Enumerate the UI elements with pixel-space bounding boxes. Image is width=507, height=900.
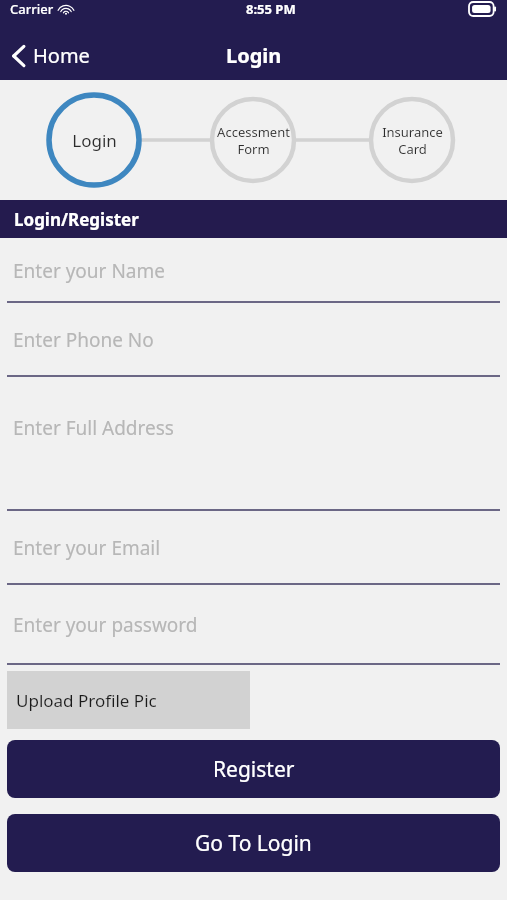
button[interactable]: Go To Login: [7, 814, 500, 872]
staticText: Carrier: [10, 0, 54, 18]
staticText: Upload Profile Pic: [16, 689, 157, 712]
button[interactable]: Enter your Name: [0, 238, 507, 303]
staticText: Register: [213, 755, 295, 784]
button[interactable]: Enter your Email: [0, 511, 507, 585]
button[interactable]: Enter your password: [0, 585, 507, 665]
button[interactable]: Insurance Card: [370, 115, 454, 165]
staticText: Insurance Card: [382, 123, 443, 158]
staticText: Accessment Form: [217, 123, 290, 158]
button[interactable]: Accessment Form: [211, 115, 295, 165]
staticText: Enter Full Address: [13, 415, 174, 441]
staticText: Enter your password: [13, 612, 198, 638]
staticText: Login: [226, 42, 282, 69]
button[interactable]: Enter Full Address: [0, 377, 507, 511]
button[interactable]: Home: [0, 36, 100, 75]
button[interactable]: Login: [49, 115, 139, 165]
staticText: Login/Register: [14, 208, 139, 231]
staticText: Home: [33, 42, 90, 69]
staticText: Go To Login: [195, 829, 312, 858]
button[interactable]: Enter Phone No: [0, 303, 507, 377]
button[interactable]: Upload Profile Pic: [7, 671, 250, 729]
staticText: Enter Phone No: [13, 327, 154, 353]
staticText: Login: [72, 129, 117, 152]
staticText: 8:55 PM: [246, 0, 296, 18]
staticText: Enter your Name: [13, 258, 165, 284]
button[interactable]: Register: [7, 740, 500, 798]
staticText: Enter your Email: [13, 535, 161, 561]
